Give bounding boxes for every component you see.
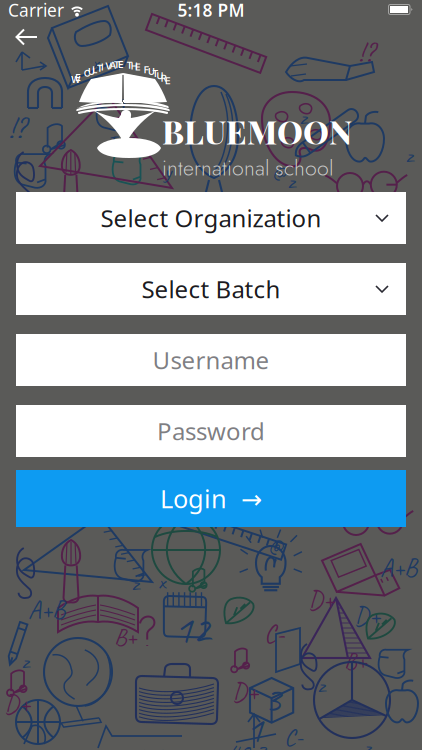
staticText: B+: [114, 622, 137, 652]
staticText: U: [88, 66, 95, 77]
staticText: C: [84, 68, 91, 79]
staticText: W: [71, 74, 81, 85]
button[interactable]: Select Batch: [16, 263, 406, 315]
staticText: [122, 59, 124, 70]
staticText: [139, 63, 141, 74]
staticText: R: [161, 73, 167, 84]
staticText: V: [105, 60, 112, 72]
staticText: !?: [358, 36, 374, 70]
button[interactable]: Login →: [16, 470, 406, 527]
staticText: F: [144, 64, 149, 76]
staticText: T: [114, 59, 120, 70]
staticText: Password: [157, 415, 265, 447]
staticText: Login →: [160, 482, 262, 515]
staticText: @: [268, 530, 283, 559]
staticText: E: [165, 75, 171, 86]
staticText: T: [152, 68, 158, 79]
staticText: D+: [4, 688, 30, 720]
staticText: D+: [308, 584, 334, 616]
staticText: z: [300, 104, 307, 131]
staticText: E: [118, 59, 124, 70]
staticText: [79, 70, 81, 81]
staticText: C-: [284, 722, 303, 750]
staticText: @: [272, 158, 286, 185]
staticText: U: [156, 70, 163, 82]
staticText: T: [126, 60, 132, 71]
staticText: I+: [106, 130, 125, 157]
staticText: z: [22, 648, 29, 675]
staticText: z: [288, 168, 295, 195]
staticText: z: [318, 672, 325, 699]
staticText: H: [131, 60, 138, 72]
staticText: x: [92, 50, 99, 75]
staticText: Select Batch: [141, 273, 280, 305]
staticText: x + y: [114, 730, 169, 750]
staticText: B+: [344, 646, 367, 676]
staticText: 3: [264, 676, 281, 723]
button[interactable]: Password: [16, 405, 406, 457]
button[interactable]: Back: [5, 20, 48, 54]
staticText: z: [364, 734, 371, 750]
staticText: D+: [232, 676, 258, 708]
staticText: z: [406, 142, 413, 169]
staticText: z: [132, 570, 139, 597]
staticText: 1: [246, 706, 263, 750]
staticText: I: [101, 61, 104, 73]
staticText: 40:3: [228, 736, 266, 750]
staticText: E: [135, 61, 141, 73]
staticText: A+B: [380, 552, 417, 584]
staticText: E: [75, 72, 81, 83]
staticText: !?: [8, 110, 25, 147]
staticText: L: [92, 64, 97, 75]
staticText: 5:18 PM: [177, 0, 244, 21]
staticText: C-: [264, 618, 284, 650]
staticText: 12: [174, 604, 210, 654]
staticText: A: [109, 60, 116, 71]
button[interactable]: Select Organization: [16, 192, 406, 244]
staticText: Username: [152, 344, 269, 376]
staticText: A+B: [28, 594, 65, 626]
staticText: U: [148, 66, 155, 77]
button[interactable]: Username: [16, 334, 406, 386]
staticText: x: [158, 568, 165, 595]
staticText: Select Organization: [100, 202, 321, 234]
staticText: T: [97, 63, 103, 74]
staticText: international school: [162, 153, 333, 183]
staticText: D+: [354, 600, 380, 632]
staticText: Carrier: [8, 0, 64, 21]
staticText: y: [164, 158, 171, 185]
staticText: BLUEMOON: [162, 110, 352, 153]
